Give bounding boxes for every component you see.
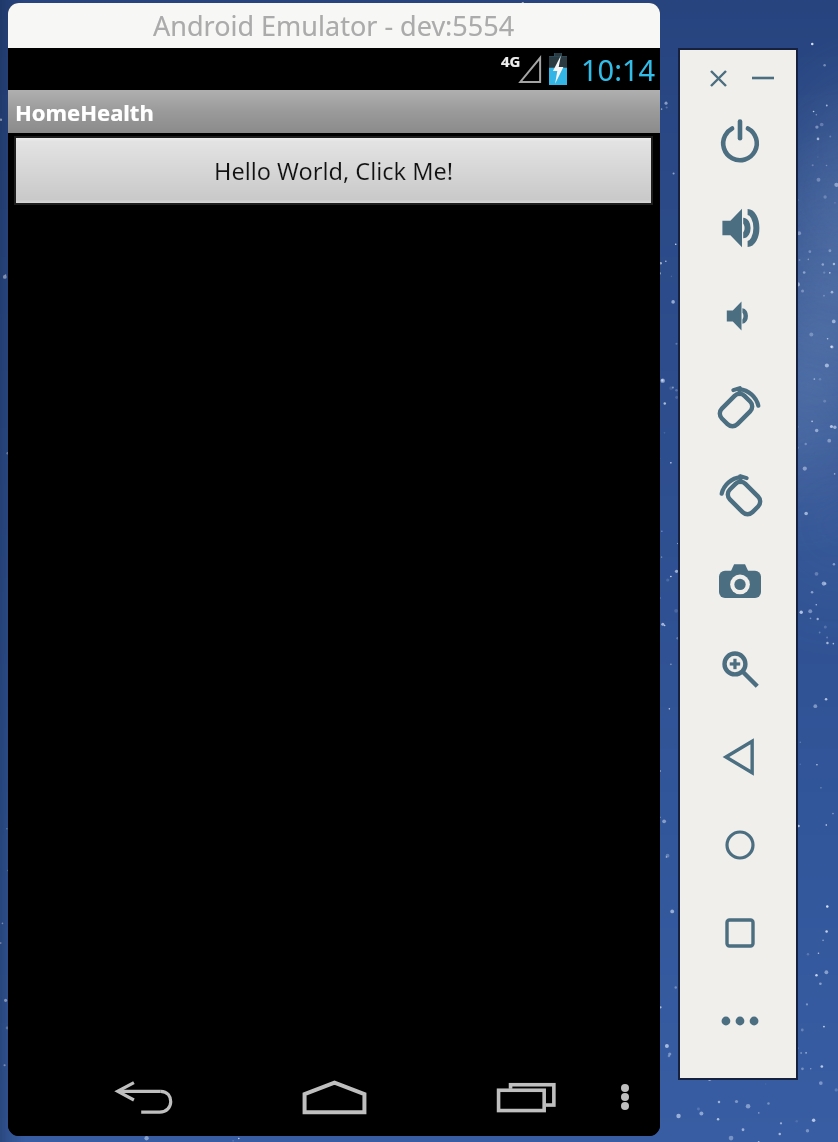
button[interactable]: Close <box>697 57 739 99</box>
button[interactable]: Minimize <box>742 57 784 99</box>
button[interactable]: More <box>709 990 771 1052</box>
staticText: Android Emulator - dev:5554 <box>153 7 515 44</box>
button[interactable]: Power <box>709 109 771 171</box>
staticText: HomeHealth <box>15 97 154 127</box>
button[interactable]: Rotate right <box>709 461 771 523</box>
button[interactable]: Volume up <box>709 197 771 259</box>
staticText: Hello World, Click Me! <box>214 155 454 187</box>
button[interactable]: Take screenshot <box>709 550 771 612</box>
button[interactable]: Volume down <box>709 285 771 347</box>
button[interactable]: Home <box>709 814 771 876</box>
button[interactable]: Zoom <box>709 638 771 700</box>
button[interactable]: Home <box>294 1067 374 1127</box>
button[interactable]: Menu <box>600 1070 650 1124</box>
staticText: 4G <box>501 51 521 71</box>
button[interactable]: Hello World, Click Me! <box>16 138 651 203</box>
staticText: 10:14 <box>581 50 656 89</box>
button[interactable]: Overview <box>709 902 771 964</box>
button[interactable]: Back <box>709 726 771 788</box>
button[interactable]: Rotate left <box>709 373 771 435</box>
button[interactable]: Recent apps <box>489 1071 563 1123</box>
button[interactable]: Back <box>108 1069 180 1125</box>
